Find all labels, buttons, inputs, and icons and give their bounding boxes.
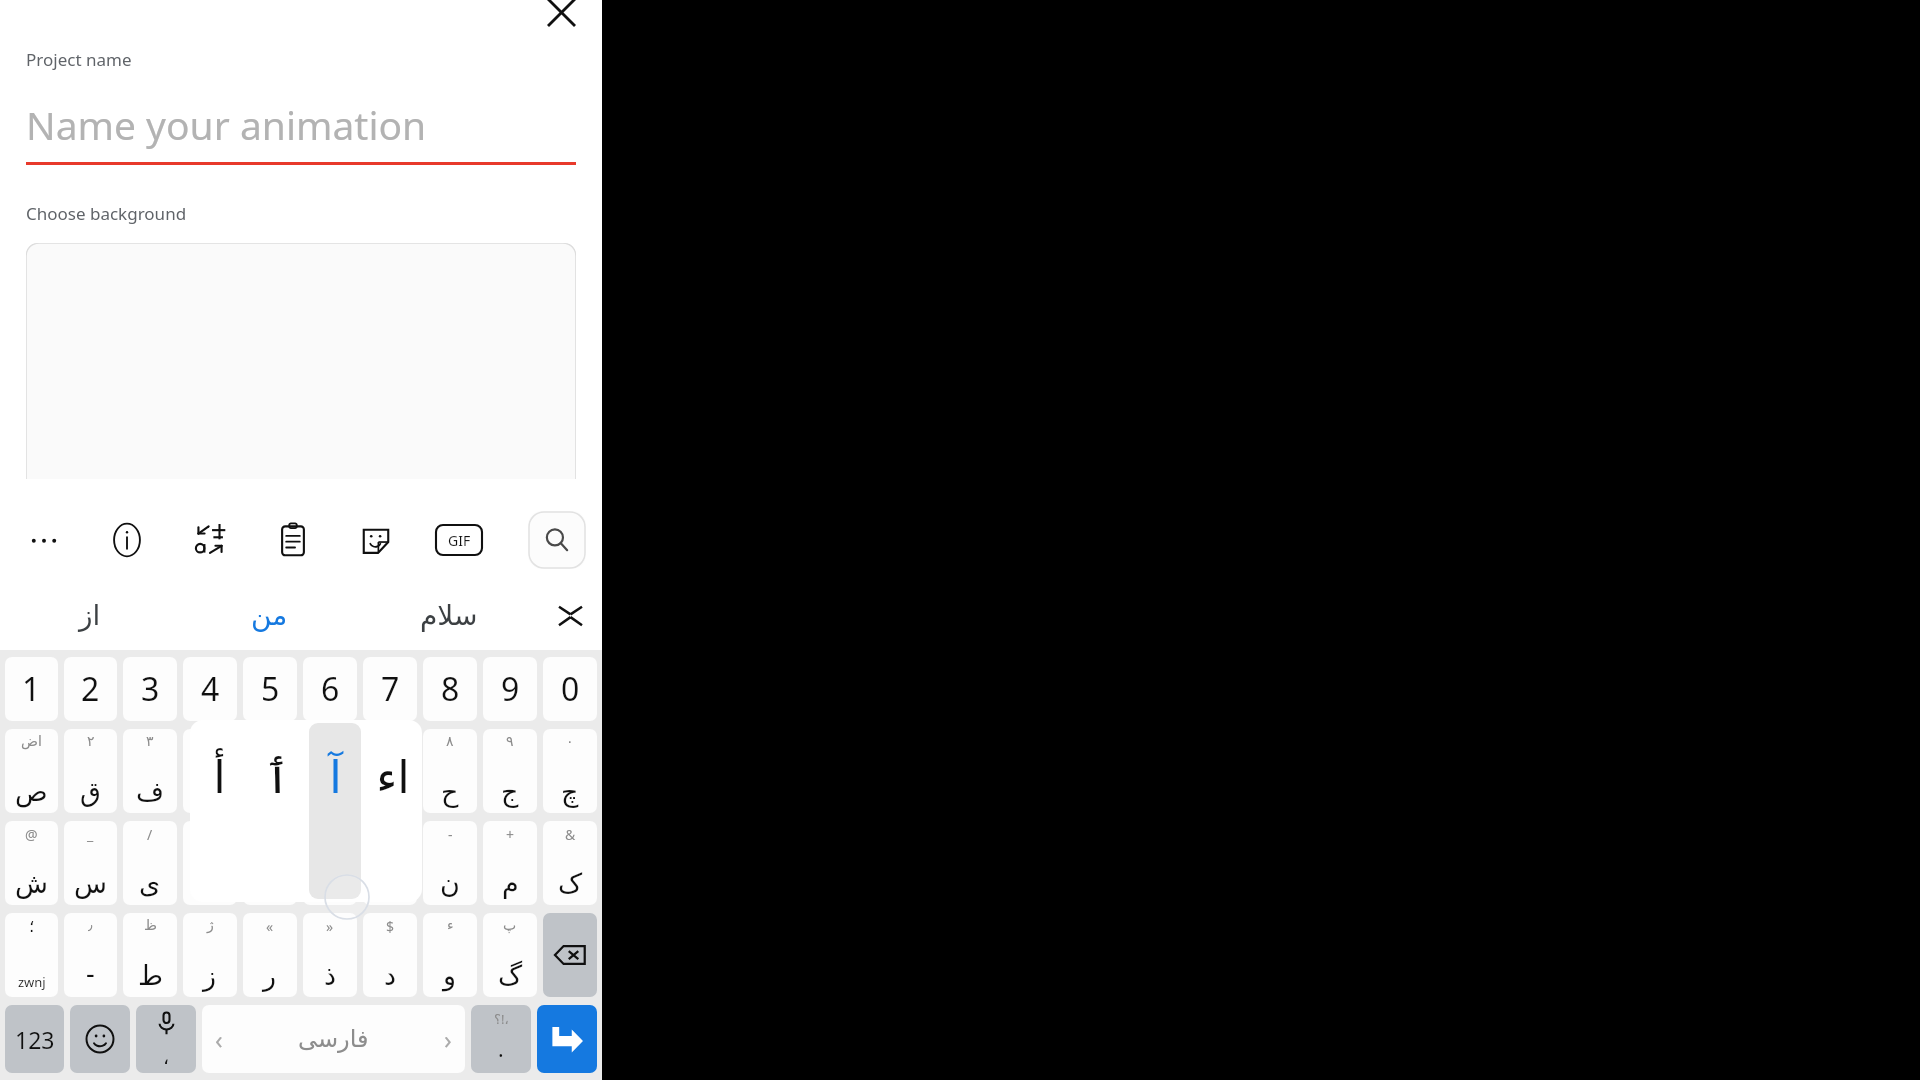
staticText: 1	[22, 667, 41, 711]
button[interactable]: $	[363, 913, 417, 997]
staticText: پ	[503, 917, 517, 933]
button[interactable]: @	[5, 821, 58, 905]
button[interactable]: ؟!،	[471, 1005, 531, 1073]
button[interactable]: 0	[543, 657, 597, 721]
button[interactable]: Close	[529, 0, 593, 44]
staticText: اء	[376, 751, 410, 803]
staticText: م	[502, 868, 519, 899]
button[interactable]: Next	[537, 1005, 597, 1073]
button[interactable]: &	[543, 821, 597, 905]
button[interactable]: 9	[483, 657, 537, 721]
staticText: GIF	[448, 531, 471, 550]
staticText: سلام	[420, 599, 478, 632]
button[interactable]: Search	[528, 511, 586, 569]
staticText: ›	[444, 1022, 452, 1056]
staticText: Project name	[26, 48, 132, 71]
staticText: ر	[263, 960, 277, 991]
button[interactable]: ۷	[363, 729, 417, 813]
button[interactable]: 4	[183, 657, 237, 721]
button[interactable]: (	[363, 821, 417, 905]
button[interactable]: /	[123, 821, 177, 905]
button[interactable]: Emoji	[70, 1005, 130, 1073]
staticText: ا	[326, 868, 334, 899]
staticText: zwnj	[18, 973, 46, 991]
staticText: 4	[201, 667, 220, 711]
button[interactable]: +	[483, 821, 537, 905]
button[interactable]: _	[64, 821, 117, 905]
button[interactable]: ۶	[303, 729, 357, 813]
staticText: 9	[501, 667, 520, 711]
button[interactable]: -	[423, 821, 477, 905]
button[interactable]: Space	[202, 1005, 465, 1073]
staticText: -	[86, 954, 95, 991]
button[interactable]: 2	[64, 657, 117, 721]
button[interactable]: ۹	[483, 729, 537, 813]
button[interactable]: Stickers	[348, 512, 404, 568]
button[interactable]: اء	[367, 723, 419, 899]
staticText: أ	[213, 751, 226, 803]
staticText: ۲	[87, 733, 95, 749]
button[interactable]: More options	[16, 512, 72, 568]
button[interactable]: GIF	[431, 512, 487, 568]
button[interactable]: ۰	[543, 729, 597, 813]
staticText: »	[326, 917, 334, 936]
button[interactable]: ۵	[243, 729, 297, 813]
button[interactable]: ؛	[5, 913, 58, 997]
button[interactable]: Voice input	[136, 1005, 196, 1073]
button[interactable]: «	[243, 913, 297, 997]
button[interactable]: 1	[5, 657, 58, 721]
staticText: «	[266, 917, 274, 936]
staticText: ج	[501, 776, 519, 807]
staticText: ء	[447, 917, 454, 933]
staticText: ط	[138, 960, 163, 991]
button[interactable]: ۳	[123, 729, 177, 813]
staticText: Choose background	[26, 202, 187, 225]
button[interactable]: Translate	[182, 512, 238, 568]
button[interactable]: آ	[309, 723, 361, 899]
staticText: اض	[21, 733, 42, 749]
button[interactable]: من	[180, 580, 359, 650]
button[interactable]: از	[0, 580, 180, 650]
button[interactable]: سلام	[359, 580, 538, 650]
staticText: 2	[81, 667, 100, 711]
button[interactable]: 3	[123, 657, 177, 721]
staticText: ظ	[144, 917, 157, 933]
button[interactable]: ۲	[64, 729, 117, 813]
button[interactable]: ٲ	[251, 723, 303, 899]
button[interactable]: Backspace	[543, 913, 597, 997]
staticText: -	[448, 825, 453, 844]
staticText: &	[565, 825, 576, 844]
button[interactable]: پ	[483, 913, 537, 997]
staticText: ک	[558, 868, 583, 899]
button[interactable]: 123	[5, 1005, 64, 1073]
button[interactable]: ظ	[123, 913, 177, 997]
button[interactable]: Clipboard	[265, 512, 321, 568]
staticText: $	[386, 917, 395, 936]
button[interactable]: ژ	[183, 913, 237, 997]
button[interactable]: ۸	[423, 729, 477, 813]
button[interactable]: 6	[303, 657, 357, 721]
button[interactable]: "	[303, 821, 357, 905]
button[interactable]: Name your animation	[26, 93, 576, 155]
button[interactable]: 5	[243, 657, 297, 721]
button[interactable]: »	[303, 913, 357, 997]
button[interactable]: أ	[193, 723, 245, 899]
button[interactable]: ٫	[64, 913, 117, 997]
button[interactable]: Info	[99, 512, 155, 568]
button[interactable]: 7	[363, 657, 417, 721]
staticText: د	[384, 960, 397, 991]
button[interactable]: ۴	[183, 729, 237, 813]
button[interactable]: اض	[5, 729, 58, 813]
button[interactable]: 8	[423, 657, 477, 721]
button[interactable]: ء	[423, 913, 477, 997]
button[interactable]: Collapse suggestions	[538, 580, 602, 650]
staticText: @	[25, 825, 38, 844]
staticText: 123	[15, 1024, 55, 1055]
